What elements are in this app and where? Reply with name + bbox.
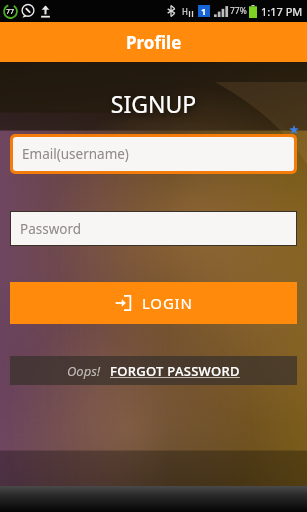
button[interactable]: Oops! bbox=[10, 356, 297, 385]
button[interactable]: LOGIN bbox=[10, 282, 297, 324]
staticText: H bbox=[182, 6, 188, 17]
staticText: LOGIN bbox=[142, 293, 193, 313]
button[interactable]: Email(username) bbox=[10, 134, 297, 174]
staticText: SIGNUP bbox=[0, 88, 307, 119]
button[interactable]: Password bbox=[10, 211, 297, 246]
staticText: Oops! bbox=[67, 362, 101, 380]
staticText: Profile bbox=[126, 31, 182, 54]
staticText: 1 bbox=[201, 5, 207, 17]
staticText: Password bbox=[20, 220, 82, 238]
staticText: 1:17 PM bbox=[261, 4, 303, 19]
staticText: Email(username) bbox=[22, 145, 129, 163]
staticText: 77% bbox=[230, 5, 247, 17]
staticText: FORGOT PASSWORD bbox=[110, 362, 240, 380]
staticText: 77 bbox=[6, 7, 15, 17]
